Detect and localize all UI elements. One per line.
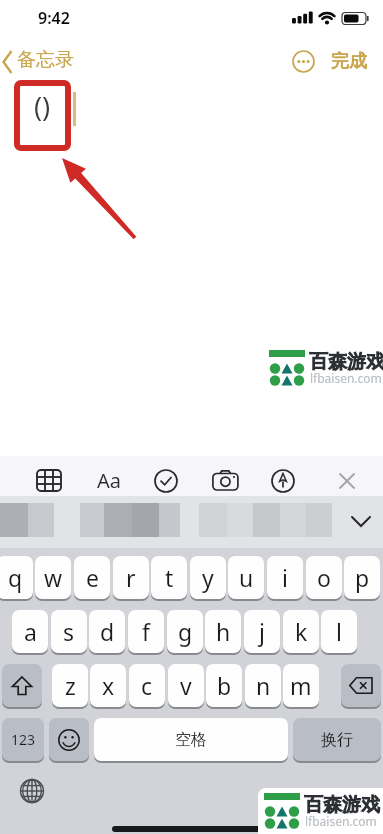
staticText: n [256,670,271,701]
button[interactable] [338,472,356,490]
button[interactable] [19,778,45,804]
staticText: b [217,670,232,701]
button[interactable] [271,469,295,493]
staticText: p [355,562,370,593]
button[interactable]: s [51,610,87,653]
staticText: 百森游戏 [304,793,380,817]
staticText: e [86,562,99,593]
staticText: r [126,562,136,593]
button[interactable]: f [128,610,164,653]
staticText: lfbaisen.com [305,813,377,829]
button[interactable]: k [283,610,319,653]
button[interactable]: 备忘录 [0,48,80,76]
button[interactable]: 完成 [331,50,367,73]
button[interactable] [350,515,372,529]
staticText: y [202,562,214,593]
button[interactable]: t [151,556,187,599]
staticText: 123 [11,730,36,749]
staticText: () [34,88,51,125]
button[interactable]: Aa [95,467,123,493]
button[interactable] [341,664,381,707]
button[interactable] [154,469,178,493]
button[interactable]: 换行 [293,718,381,761]
button[interactable]: p [344,556,380,599]
button[interactable]: b [206,664,242,707]
staticText: s [63,616,75,647]
staticText: lfbaisen.com [310,370,382,386]
staticText: u [239,562,254,593]
button[interactable]: a [12,610,48,653]
button[interactable]: y [190,556,226,599]
button[interactable] [49,718,89,761]
staticText: t [165,562,174,593]
staticText: Aa [97,467,121,493]
button[interactable]: u [228,556,264,599]
button[interactable]: l [321,610,357,653]
staticText: 换行 [321,730,353,750]
button[interactable]: () [14,80,71,151]
button[interactable] [263,345,383,391]
staticText: 百森游戏 [309,350,383,374]
button[interactable]: e [74,556,110,599]
button[interactable] [292,50,315,73]
staticText: h [216,616,231,647]
button[interactable]: g [167,610,203,653]
button[interactable]: n [245,664,281,707]
button[interactable]: 9:42 [38,7,70,29]
staticText: v [180,670,192,701]
button[interactable]: m [283,664,319,707]
staticText: d [100,616,115,647]
staticText: 备忘录 [17,48,74,72]
button[interactable] [212,470,239,491]
staticText: o [317,562,331,593]
button[interactable] [36,469,62,492]
button[interactable]: w [35,556,71,599]
button[interactable]: h [205,610,241,653]
staticText: m [290,670,312,701]
staticText: f [142,616,150,647]
button[interactable]: c [129,664,165,707]
staticText: 9:42 [38,7,70,29]
button[interactable] [258,788,383,834]
button[interactable]: j [244,610,280,653]
staticText: l [336,616,342,647]
button[interactable]: x [90,664,126,707]
button[interactable]: v [168,664,204,707]
staticText: 完成 [331,50,367,73]
staticText: x [102,670,115,701]
button[interactable]: 空格 [94,718,288,761]
staticText: 空格 [175,730,207,750]
button[interactable]: o [306,556,342,599]
button[interactable]: q [0,556,33,599]
button[interactable]: i [267,556,303,599]
staticText: z [65,670,76,701]
staticText: q [8,562,23,593]
staticText: g [178,616,193,647]
button[interactable]: z [52,664,88,707]
button[interactable]: d [89,610,125,653]
staticText: i [282,562,288,593]
button[interactable] [2,664,42,707]
button[interactable]: 123 [2,718,44,761]
staticText: c [141,670,153,701]
staticText: k [295,616,308,647]
button[interactable]: r [113,556,149,599]
staticText: j [259,616,265,647]
staticText: a [24,616,37,647]
staticText: w [44,562,63,593]
